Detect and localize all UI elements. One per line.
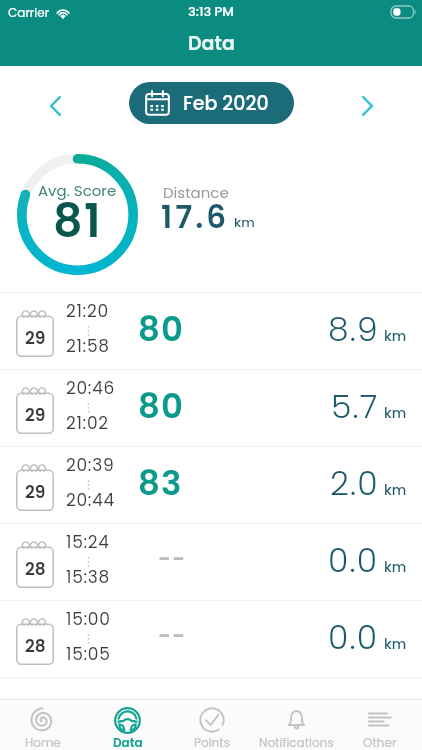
staticText: Other: [363, 734, 397, 750]
button[interactable]: 29: [0, 293, 422, 369]
staticText: 20:39: [66, 453, 115, 477]
button[interactable]: 29: [0, 370, 422, 446]
staticText: 15:24: [66, 530, 110, 554]
button[interactable]: 28: [0, 601, 422, 677]
staticText: 83: [138, 459, 183, 507]
staticText: Avg. Score: [38, 180, 117, 201]
staticText: 28: [25, 557, 46, 581]
staticText: 21:20: [66, 299, 109, 323]
staticText: Carrier: [8, 4, 50, 21]
staticText: 0.0: [328, 614, 379, 660]
staticText: km: [384, 326, 407, 346]
staticText: 3:13 PM: [188, 2, 234, 20]
staticText: Feb 2020: [183, 90, 269, 117]
staticText: Notifications: [259, 734, 334, 750]
staticText: 29: [25, 403, 46, 427]
staticText: 2.0: [330, 460, 379, 506]
staticText: 5.7: [331, 383, 379, 429]
button[interactable]: Home: [0, 700, 85, 750]
staticText: km: [384, 557, 407, 577]
staticText: 20:44: [66, 488, 115, 512]
staticText: Points: [194, 734, 230, 750]
button[interactable]: Points: [170, 700, 254, 750]
staticText: --: [158, 544, 187, 575]
staticText: Data: [113, 734, 143, 750]
button[interactable]: Feb 2020: [129, 82, 294, 124]
staticText: 15:38: [66, 565, 110, 589]
button[interactable]: 28: [0, 524, 422, 600]
button[interactable]: Other: [338, 700, 422, 750]
button[interactable]: Notifications: [254, 700, 338, 750]
staticText: 21:58: [66, 334, 110, 358]
staticText: 80: [138, 382, 185, 430]
staticText: Data: [188, 30, 235, 57]
staticText: 20:46: [66, 376, 116, 400]
staticText: 8.9: [328, 306, 379, 352]
staticText: --: [158, 621, 187, 652]
staticText: 15:05: [66, 642, 111, 666]
staticText: Home: [25, 734, 61, 750]
staticText: km: [234, 213, 255, 231]
staticText: km: [384, 480, 407, 500]
staticText: 29: [25, 480, 46, 504]
staticText: 21:02: [66, 411, 109, 435]
staticText: 80: [138, 305, 185, 353]
staticText: km: [384, 403, 407, 423]
staticText: Distance: [163, 182, 229, 203]
staticText: km: [384, 634, 407, 654]
staticText: 81: [53, 189, 103, 253]
button[interactable]: Data: [85, 700, 170, 750]
staticText: 29: [25, 326, 46, 350]
button[interactable]: Next month: [347, 86, 387, 126]
staticText: 0.0: [328, 537, 379, 583]
staticText: 15:00: [66, 607, 111, 631]
staticText: 28: [25, 634, 46, 658]
button[interactable]: 29: [0, 447, 422, 523]
button[interactable]: Previous month: [35, 86, 75, 126]
staticText: 17.6: [161, 195, 230, 238]
